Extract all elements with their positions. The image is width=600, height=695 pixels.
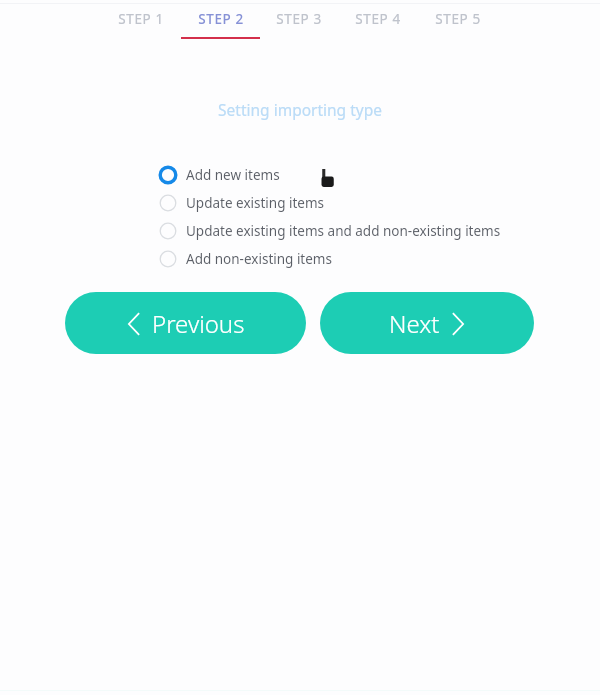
staticText: Next — [389, 307, 440, 340]
staticText: Update existing items — [186, 194, 325, 212]
staticText: STEP 1 — [118, 10, 164, 28]
staticText: Setting importing type — [218, 99, 382, 120]
button[interactable]: Next — [320, 292, 534, 354]
staticText: STEP 2 — [198, 10, 244, 28]
staticText: STEP 3 — [276, 10, 322, 28]
button[interactable]: STEP 1 — [97, 10, 185, 48]
button[interactable]: Add non-existing items — [159, 248, 332, 270]
staticText: STEP 4 — [355, 10, 401, 28]
button[interactable]: Add new items — [159, 164, 280, 186]
button[interactable]: STEP 3 — [255, 10, 343, 48]
button[interactable]: STEP 4 — [334, 10, 422, 48]
staticText: Add new items — [186, 166, 280, 184]
button[interactable]: STEP 5 — [414, 10, 502, 48]
button[interactable]: STEP 2 — [176, 10, 264, 48]
button[interactable]: Update existing items — [159, 192, 325, 214]
staticText: Update existing items and add non-existi… — [186, 222, 501, 240]
staticText: STEP 5 — [435, 10, 481, 28]
staticText: Previous — [152, 307, 245, 340]
staticText: Add non-existing items — [186, 250, 332, 268]
button[interactable]: Previous — [65, 292, 306, 354]
button[interactable]: Update existing items and add non-existi… — [159, 220, 501, 242]
